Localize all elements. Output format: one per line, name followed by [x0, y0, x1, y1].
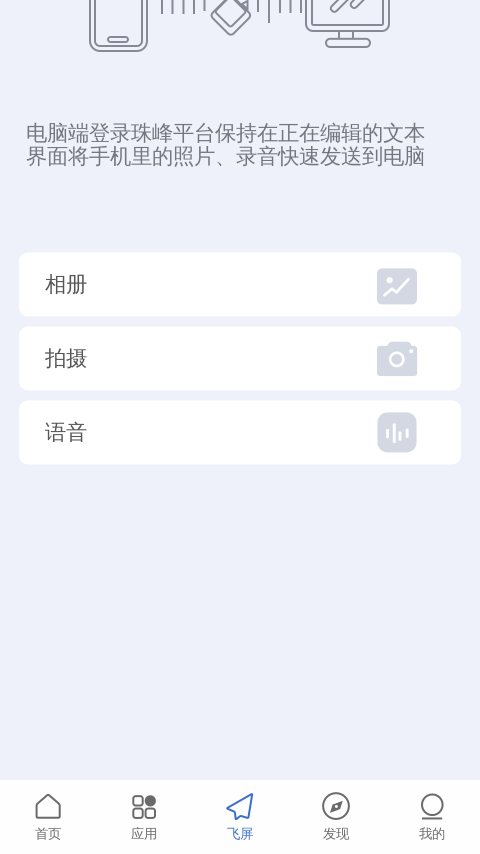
staticText: 界面将手机里的照片、录音快速发送到电脑: [26, 143, 425, 169]
staticText: 应用: [131, 826, 157, 842]
staticText: 首页: [35, 826, 61, 842]
button[interactable]: 首页: [0, 780, 96, 854]
staticText: 拍摄: [45, 345, 87, 371]
button[interactable]: 飞屏: [192, 780, 288, 854]
button[interactable]: 发现: [288, 780, 384, 854]
button[interactable]: 拍摄: [19, 326, 461, 390]
button[interactable]: 我的: [384, 780, 480, 854]
button[interactable]: 相册: [19, 252, 461, 316]
button[interactable]: 应用: [96, 780, 192, 854]
staticText: 发现: [323, 826, 349, 842]
staticText: 飞屏: [227, 826, 253, 842]
staticText: 我的: [419, 826, 445, 842]
staticText: 相册: [45, 271, 87, 297]
staticText: 语音: [45, 419, 87, 445]
staticText: 电脑端登录珠峰平台保持在正在编辑的文本: [26, 120, 425, 146]
button[interactable]: 语音: [19, 400, 461, 464]
